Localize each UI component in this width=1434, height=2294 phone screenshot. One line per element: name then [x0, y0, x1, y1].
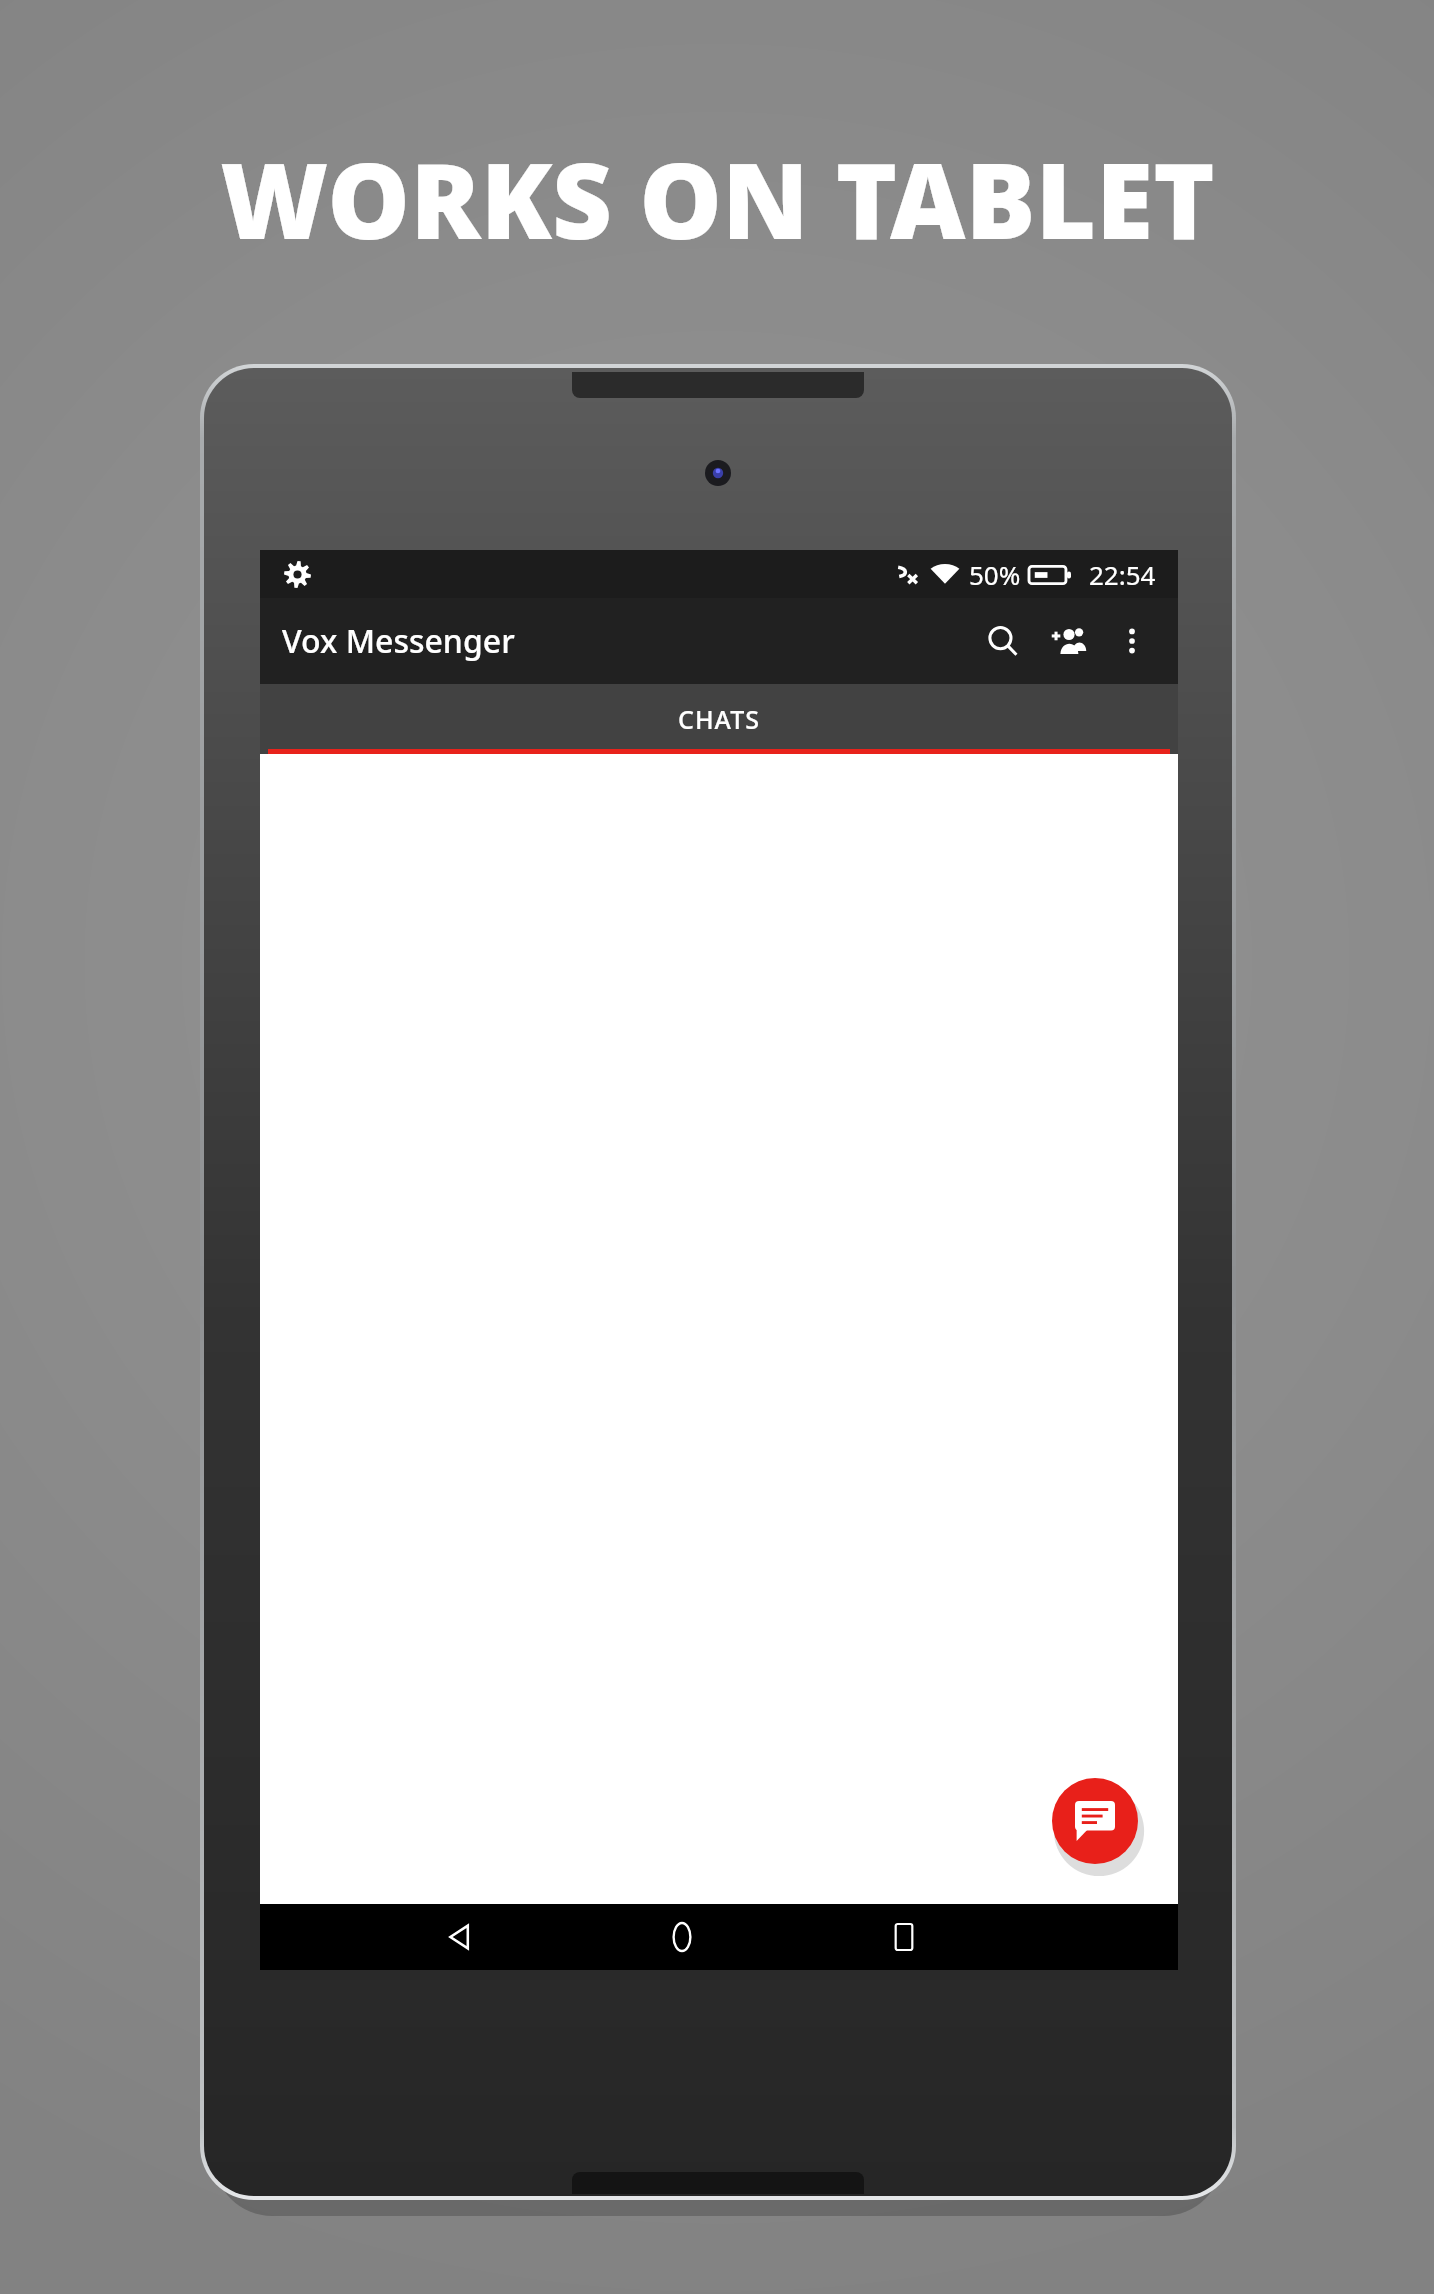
button[interactable]: More options — [1102, 611, 1162, 671]
staticText: Vox Messenger — [282, 619, 515, 663]
button[interactable]: Add group — [1036, 608, 1102, 674]
button[interactable]: CHATS — [260, 684, 1178, 754]
button[interactable]: Recent apps — [871, 1904, 937, 1970]
staticText: 22:54 — [1089, 557, 1156, 592]
button[interactable]: Home — [649, 1904, 715, 1970]
button[interactable]: Search — [970, 608, 1036, 674]
button[interactable]: New chat — [1052, 1778, 1138, 1864]
staticText: CHATS — [678, 702, 761, 736]
button[interactable]: Back — [427, 1904, 493, 1970]
staticText: 50% — [969, 557, 1021, 592]
staticText: WORKS ON TABLET — [220, 128, 1215, 270]
